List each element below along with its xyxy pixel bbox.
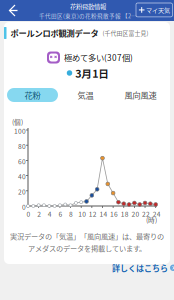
button[interactable]: マイ天気	[136, 3, 172, 17]
staticText: マイ天気	[146, 5, 170, 14]
staticText: 6	[58, 209, 62, 219]
staticText: 0	[22, 202, 26, 212]
staticText: 花粉飛散情報	[70, 2, 106, 11]
staticText: 風向風速	[124, 89, 156, 101]
staticText: (個)	[12, 117, 23, 127]
staticText: 2	[37, 209, 41, 219]
staticText: (時)	[146, 215, 157, 225]
staticText: 12	[89, 209, 97, 219]
staticText: 16	[110, 209, 118, 219]
staticText: 18	[121, 209, 129, 219]
button[interactable]: Back	[1, 0, 23, 21]
staticText: 気温	[77, 89, 93, 101]
staticText: ポールンロボ観測データ	[10, 27, 98, 39]
staticText: 60	[18, 156, 26, 166]
staticText: 花粉	[24, 89, 40, 101]
button[interactable]: 風向風速	[113, 88, 168, 102]
staticText: 千代田区(東京)の花粉飛散予報 【2…	[39, 12, 137, 20]
staticText: 14	[99, 209, 107, 219]
button[interactable]: 花粉	[7, 88, 58, 102]
staticText: 22	[142, 209, 150, 219]
staticText: 詳しくはこちら	[112, 262, 168, 274]
staticText: アメダスのデータを掲載しています。	[28, 243, 146, 253]
staticText: 実況データの「気温」「風向風速」は、最寄りの	[10, 231, 164, 241]
staticText: 20	[18, 187, 26, 196]
staticText: 80	[18, 141, 26, 151]
staticText: 40	[18, 172, 26, 181]
staticText: 24	[153, 209, 161, 219]
staticText: 20	[131, 209, 139, 219]
staticText: (千代田区富士見)	[102, 29, 148, 37]
button[interactable]: 詳しくはこちら	[112, 262, 174, 274]
button[interactable]: 気温	[58, 88, 113, 102]
staticText: 100	[14, 126, 26, 136]
staticText: 極めて多い(307個)	[64, 51, 133, 63]
staticText: 3月1日	[75, 65, 109, 81]
staticText: 10	[78, 209, 86, 219]
staticText: 0	[26, 209, 30, 219]
staticText: 4	[48, 209, 52, 219]
staticText: 8	[69, 209, 73, 219]
